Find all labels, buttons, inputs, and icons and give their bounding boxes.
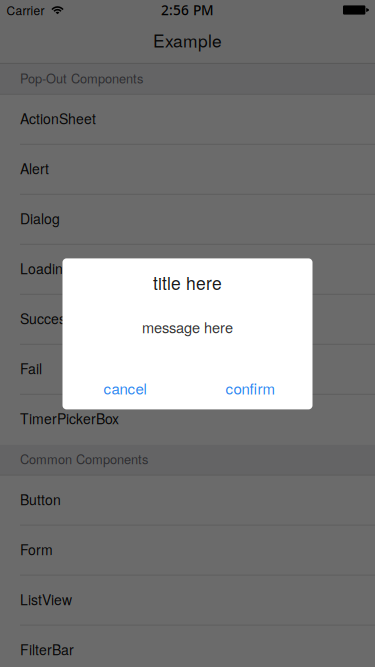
staticText: ActionSheet	[20, 108, 96, 128]
staticText: Dialog	[20, 208, 60, 228]
button[interactable]: Form	[0, 526, 375, 576]
button[interactable]: Dialog	[0, 195, 375, 245]
staticText: 2:56 PM	[161, 1, 214, 19]
staticText: Form	[20, 539, 53, 559]
staticText: confirm	[225, 377, 274, 399]
staticText: title here	[153, 270, 222, 295]
staticText: Common Components	[20, 450, 148, 468]
button[interactable]: Fail	[0, 345, 375, 395]
button[interactable]: Success	[0, 295, 375, 345]
staticText: cancel	[103, 377, 146, 399]
button[interactable]: Loading	[0, 245, 375, 295]
staticText: FilterBar	[20, 639, 74, 659]
button[interactable]: Alert	[0, 145, 375, 195]
button[interactable]: Button	[0, 476, 375, 526]
button[interactable]: confirm	[187, 369, 312, 407]
button[interactable]: cancel	[62, 369, 187, 407]
button[interactable]: ListView	[0, 576, 375, 626]
staticText: Pop-Out Components	[20, 69, 143, 87]
staticText: Example	[153, 27, 222, 52]
staticText: message here	[142, 316, 233, 337]
staticText: Success	[20, 308, 73, 328]
staticText: ListView	[20, 589, 72, 609]
button[interactable]: FilterBar	[0, 626, 375, 667]
button[interactable]: ActionSheet	[0, 95, 375, 145]
staticText: Fail	[20, 358, 42, 378]
staticText: Loading	[20, 258, 71, 278]
staticText: Carrier	[6, 1, 44, 19]
staticText: TimerPickerBox	[20, 408, 119, 428]
staticText: Button	[20, 489, 61, 509]
button[interactable]: TimerPickerBox	[0, 395, 375, 445]
staticText: Alert	[20, 158, 49, 178]
